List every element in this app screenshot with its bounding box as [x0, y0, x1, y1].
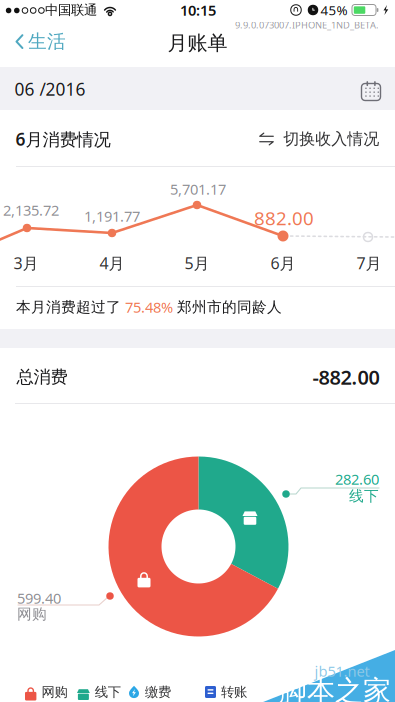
staticText: 网购: [41, 684, 67, 700]
staticText: 282.60: [335, 469, 379, 489]
staticText: jb51.net: [314, 661, 369, 681]
button[interactable]: 切换收入情况: [255, 119, 383, 159]
staticText: 1,191.77: [84, 206, 140, 226]
staticText: 切换收入情况: [283, 129, 379, 149]
button[interactable]: 06 /2016: [0, 67, 395, 110]
staticText: 脚本之家: [279, 674, 391, 702]
staticText: 月账单: [167, 31, 227, 55]
staticText: 本月消费超过了: [16, 298, 125, 316]
staticText: 2,135.72: [3, 200, 59, 220]
staticText: 45%: [320, 1, 347, 19]
staticText: 4月: [99, 252, 124, 274]
button[interactable]: 转账: [205, 680, 247, 702]
staticText: 7月: [356, 252, 381, 274]
staticText: 总消费: [16, 366, 67, 388]
staticText: 网购: [17, 605, 47, 623]
staticText: 3月: [13, 252, 38, 274]
button[interactable]: 线下: [77, 680, 121, 702]
staticText: 882.00: [254, 206, 314, 230]
staticText: 06 /2016: [14, 77, 85, 100]
button[interactable]: 网购: [25, 680, 67, 702]
staticText: 中国联通: [45, 2, 97, 18]
staticText: 线下: [95, 684, 121, 700]
staticText: 5,701.17: [170, 179, 226, 199]
staticText: 6月: [270, 252, 295, 274]
staticText: 5月: [184, 252, 209, 274]
staticText: 75.48%: [125, 297, 173, 317]
staticText: 6月消费情况: [15, 127, 110, 150]
staticText: 郑州市的同龄人: [173, 298, 282, 316]
staticText: 599.40: [17, 588, 61, 608]
button[interactable]: 生活: [0, 20, 78, 63]
staticText: -882.00: [312, 364, 379, 390]
staticText: 转账: [221, 684, 247, 700]
staticText: 9.9.0.073007.IPHONE_1ND_BETA.: [235, 19, 379, 31]
button[interactable]: 缴费: [128, 680, 171, 702]
staticText: 10:15: [180, 0, 216, 20]
staticText: 缴费: [145, 684, 171, 700]
staticText: 线下: [349, 487, 379, 505]
staticText: 生活: [28, 30, 66, 53]
